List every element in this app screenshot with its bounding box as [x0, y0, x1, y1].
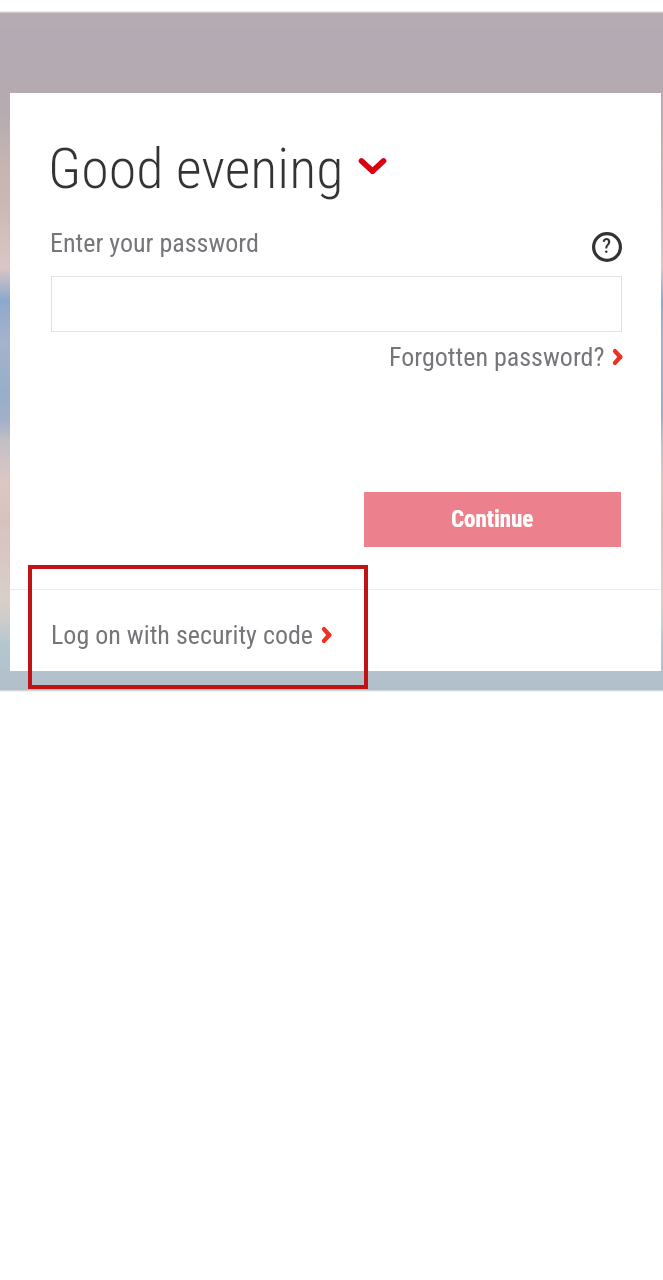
- staticText: ?: [602, 234, 612, 259]
- staticText: Enter your password: [50, 228, 259, 258]
- staticText: Log on with security code: [51, 620, 314, 650]
- button[interactable]: Continue: [364, 492, 621, 547]
- button[interactable]: Help: [584, 224, 630, 270]
- button[interactable]: [51, 276, 622, 332]
- staticText: Continue: [451, 506, 534, 533]
- staticText: Good evening: [48, 136, 344, 202]
- staticText: Forgotten password?: [389, 342, 605, 372]
- button[interactable]: Forgotten password?: [389, 342, 622, 372]
- button[interactable]: Good evening: [48, 136, 386, 202]
- button[interactable]: Log on with security code: [10, 590, 661, 671]
